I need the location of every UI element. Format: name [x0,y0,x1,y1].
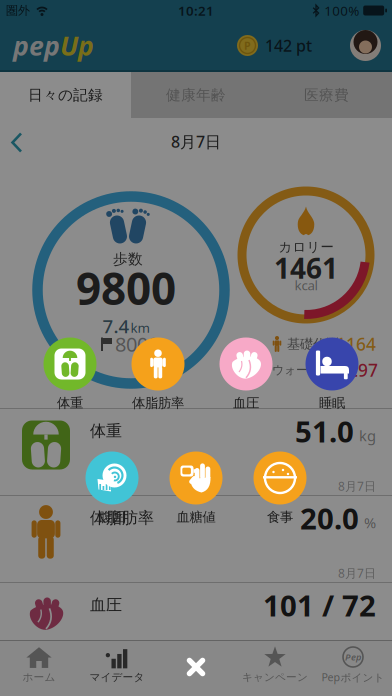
button[interactable]: 睡眠を記録 [305,337,358,390]
button[interactable]: P [237,35,312,56]
staticText: 20.0 [300,498,359,537]
staticText: マイデータ [89,671,144,684]
button[interactable]: 体脂肪率 [0,496,392,582]
staticText: ウォーキング [272,363,344,377]
staticText: 圏外 [6,3,30,18]
staticText: 体重 [90,421,122,441]
staticText: 8月7日 [338,478,376,494]
staticText: 1461 [274,249,338,287]
staticText: 142 pt [265,35,312,56]
staticText: 歩数 [113,250,143,268]
staticText: 基礎代謝 [287,336,339,352]
button[interactable]: 血圧 [0,583,392,640]
button[interactable]: 血糖値を記録 [169,451,222,504]
staticText: 日々の記録 [28,86,103,104]
staticText: 腹囲 [99,509,125,525]
button[interactable]: 体重 [0,409,392,495]
staticText: % [364,513,376,532]
button[interactable]: 体重を記録 [43,337,96,390]
staticText: 100% [324,2,359,19]
button[interactable]: マイデータ [78,648,156,684]
staticText: 8000 [115,331,159,357]
staticText: 1164 [336,332,376,355]
staticText: 食事 [267,509,293,525]
button[interactable]: キャンペーン [236,648,314,684]
button[interactable]: 医療費 [261,72,392,118]
button[interactable]: 前の日 [0,129,24,153]
staticText: 体重 [57,395,83,411]
button[interactable]: 血圧を記録 [219,337,272,390]
button[interactable]: ホーム [0,648,78,684]
staticText: 体脂肪率 [90,508,154,528]
staticText: 睡眠 [319,395,345,411]
staticText: km [130,319,149,336]
staticText: キャンペーン [242,671,308,684]
staticText: カロリー [278,239,333,255]
staticText: 健康年齢 [166,86,226,104]
staticText: 血糖値 [176,509,215,525]
staticText: 医療費 [304,86,349,104]
button[interactable]: Pep [314,647,392,684]
staticText: P [244,38,251,53]
button[interactable]: 体脂肪率を記録 [131,337,184,390]
staticText: 8月7日 [171,131,221,152]
staticText: 7.4 [102,314,129,338]
staticText: pep [13,28,60,63]
button[interactable]: 日々の記録 [0,72,131,118]
button[interactable]: 腹囲を記録 [85,451,138,504]
staticText: 8月7日 [338,565,376,581]
staticText: Pepポイント [321,670,384,684]
staticText: 血圧 [233,395,259,411]
staticText: 51.0 [295,411,354,450]
staticText: kg [359,426,376,445]
button[interactable]: 閉じる [184,655,208,679]
button[interactable]: 健康年齢 [131,72,261,118]
staticText: 体脂肪率 [132,395,184,411]
staticText: 9800 [76,259,176,317]
button[interactable]: プロフィール [350,30,381,61]
button[interactable]: 食事を記録 [253,451,306,504]
staticText: kcal [294,276,317,294]
staticText: 血圧 [90,595,122,615]
staticText: 10:21 [178,2,214,19]
staticText: 297 [348,358,378,381]
staticText: ホーム [22,671,55,684]
staticText: 101 / 72 [263,585,376,624]
staticText: Pep [345,651,361,663]
staticText: Up [60,28,94,63]
